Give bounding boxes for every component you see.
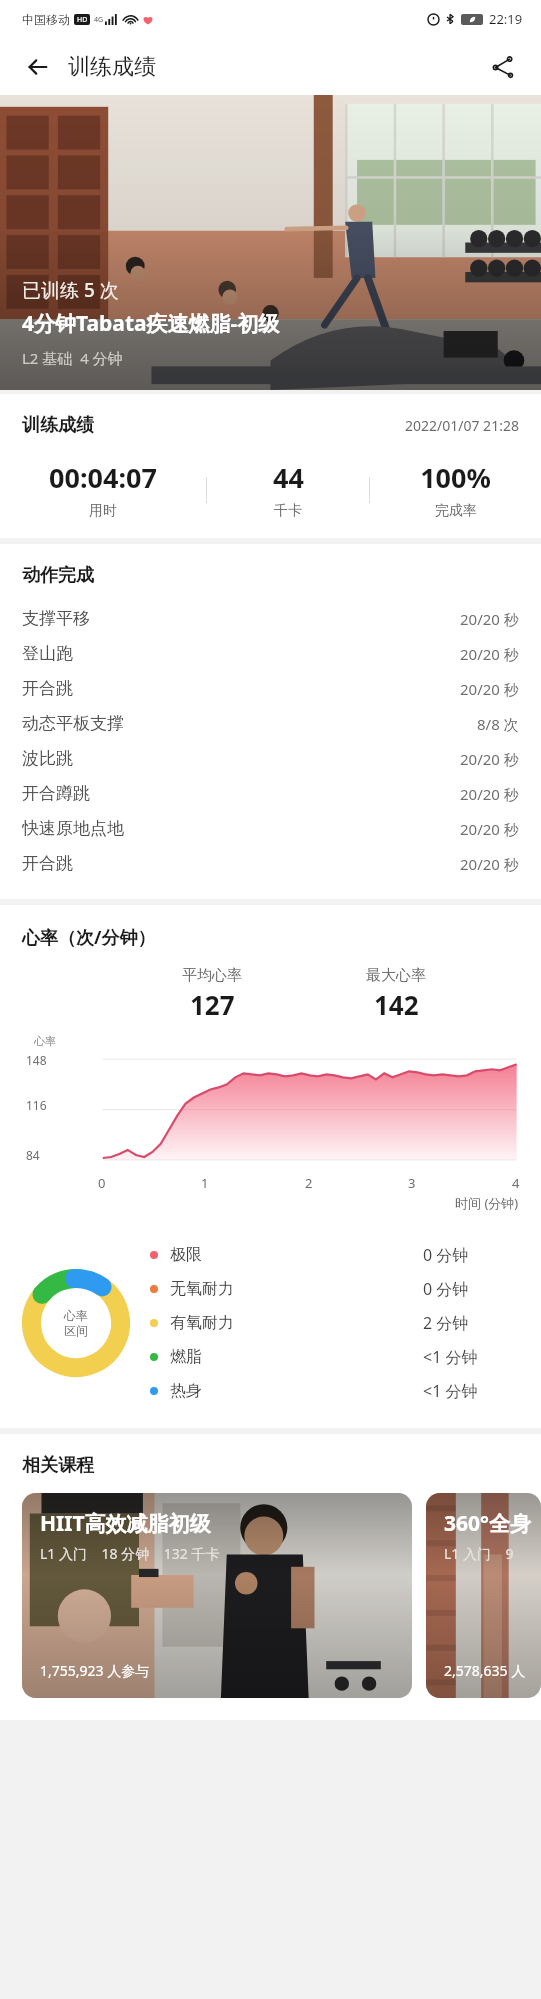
button[interactable]: 极限 bbox=[150, 1238, 519, 1272]
button[interactable]: 快速原地点地 bbox=[0, 811, 541, 846]
staticText: 动作完成 bbox=[22, 564, 94, 587]
button[interactable]: 波比跳 bbox=[0, 741, 541, 776]
button[interactable]: 360°全身 bbox=[426, 1493, 541, 1698]
staticText: 2 bbox=[305, 1174, 313, 1192]
staticText: 20/20 秒 bbox=[460, 679, 519, 699]
staticText: 开合跳 bbox=[22, 678, 73, 699]
staticText: 波比跳 bbox=[22, 748, 73, 769]
staticText: 已训练 5 次 bbox=[22, 277, 119, 303]
staticText: 8/8 次 bbox=[477, 714, 519, 734]
staticText: 开合跳 bbox=[22, 853, 73, 874]
staticText: 区间 bbox=[64, 1323, 88, 1338]
staticText: 训练成绩 bbox=[22, 414, 94, 437]
staticText: 燃脂 bbox=[170, 1347, 202, 1367]
staticText: 开合蹲跳 bbox=[22, 783, 90, 804]
button[interactable]: Back bbox=[16, 45, 60, 89]
staticText: 用时 bbox=[89, 502, 117, 520]
staticText: 127 bbox=[190, 987, 235, 1022]
button[interactable]: 支撑平移 bbox=[0, 601, 541, 636]
staticText: 完成率 bbox=[435, 502, 477, 520]
staticText: 4G bbox=[94, 15, 104, 25]
staticText: 116 bbox=[26, 1097, 47, 1113]
staticText: <1 分钟 bbox=[423, 1346, 478, 1368]
staticText: 2,578,635 人 bbox=[444, 1661, 526, 1680]
staticText: 有氧耐力 bbox=[170, 1313, 234, 1333]
staticText: L1 入门 18 分钟 132 千卡 bbox=[40, 1544, 220, 1563]
staticText: 4 bbox=[512, 1174, 520, 1192]
staticText: 心率（次/分钟） bbox=[22, 925, 156, 950]
staticText: 0 分钟 bbox=[423, 1244, 469, 1266]
staticText: 1,755,923 人参与 bbox=[40, 1661, 150, 1680]
staticText: 4分钟Tabata疾速燃脂-初级 bbox=[22, 309, 280, 338]
staticText: 支撑平移 bbox=[22, 608, 90, 629]
staticText: L2 基础 4 分钟 bbox=[22, 348, 123, 368]
staticText: 142 bbox=[374, 987, 419, 1022]
staticText: 中国移动 bbox=[22, 12, 70, 27]
staticText: <1 分钟 bbox=[423, 1380, 478, 1402]
staticText: 千卡 bbox=[274, 502, 302, 520]
button[interactable]: 有氧耐力 bbox=[150, 1306, 519, 1340]
button[interactable]: 热身 bbox=[150, 1374, 519, 1408]
staticText: HIIT高效减脂初级 bbox=[40, 1509, 211, 1538]
staticText: 2022/01/07 21:28 bbox=[405, 416, 519, 435]
staticText: 极限 bbox=[170, 1245, 202, 1265]
staticText: 2 分钟 bbox=[423, 1312, 469, 1334]
staticText: 100% bbox=[420, 459, 491, 496]
staticText: 1 bbox=[201, 1174, 209, 1192]
staticText: 心率 bbox=[34, 1034, 56, 1048]
button[interactable]: HIIT高效减脂初级 bbox=[22, 1493, 412, 1698]
staticText: 0 bbox=[98, 1174, 106, 1192]
button[interactable]: 开合跳 bbox=[0, 671, 541, 706]
staticText: 84 bbox=[26, 1147, 40, 1163]
staticText: 44 bbox=[273, 459, 304, 496]
staticText: 无氧耐力 bbox=[170, 1279, 234, 1299]
staticText: 动态平板支撑 bbox=[22, 713, 124, 734]
button[interactable]: 燃脂 bbox=[150, 1340, 519, 1374]
staticText: HD bbox=[77, 15, 88, 25]
staticText: L1 入门 9 bbox=[444, 1544, 514, 1563]
staticText: 登山跑 bbox=[22, 643, 73, 664]
staticText: 0 分钟 bbox=[423, 1278, 469, 1300]
button[interactable]: 开合跳 bbox=[0, 846, 541, 881]
staticText: 00:04:07 bbox=[49, 459, 157, 496]
button[interactable]: 登山跑 bbox=[0, 636, 541, 671]
staticText: 相关课程 bbox=[22, 1454, 94, 1477]
staticText: 20/20 秒 bbox=[460, 784, 519, 804]
staticText: 时间 (分钟) bbox=[455, 1194, 519, 1212]
button[interactable]: 开合蹲跳 bbox=[0, 776, 541, 811]
staticText: 最大心率 bbox=[366, 966, 426, 985]
staticText: 148 bbox=[26, 1052, 47, 1068]
staticText: 快速原地点地 bbox=[22, 818, 124, 839]
staticText: 平均心率 bbox=[182, 966, 242, 985]
staticText: 360°全身 bbox=[444, 1509, 531, 1538]
staticText: 20/20 秒 bbox=[460, 854, 519, 874]
staticText: 20/20 秒 bbox=[460, 749, 519, 769]
staticText: 22:19 bbox=[489, 10, 523, 28]
staticText: 心率 bbox=[64, 1308, 88, 1323]
button[interactable]: 无氧耐力 bbox=[150, 1272, 519, 1306]
staticText: 20/20 秒 bbox=[460, 644, 519, 664]
button[interactable]: Share bbox=[481, 45, 525, 89]
staticText: 20/20 秒 bbox=[460, 819, 519, 839]
staticText: 热身 bbox=[170, 1381, 202, 1401]
staticText: 3 bbox=[408, 1174, 416, 1192]
staticText: 20/20 秒 bbox=[460, 609, 519, 629]
button[interactable]: 动态平板支撑 bbox=[0, 706, 541, 741]
staticText: 训练成绩 bbox=[68, 53, 156, 81]
